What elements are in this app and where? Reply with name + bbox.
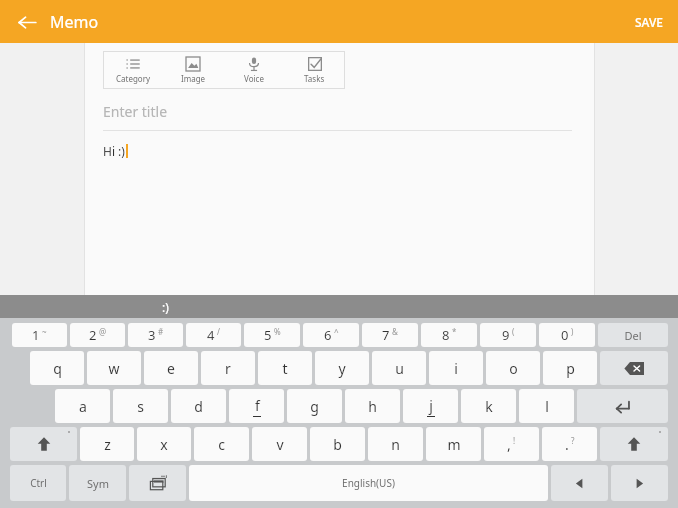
button[interactable]: x <box>137 427 191 461</box>
staticText: , <box>507 435 511 454</box>
staticText: x <box>160 435 168 454</box>
staticText: j <box>429 396 433 415</box>
button[interactable]: v <box>252 427 307 461</box>
button[interactable]: p <box>543 351 597 385</box>
button[interactable]: z <box>80 427 134 461</box>
button[interactable]: Sym <box>69 465 126 501</box>
button[interactable]: Voice <box>223 51 284 89</box>
button[interactable]: t <box>258 351 312 385</box>
button[interactable]: Ctrl <box>10 465 66 501</box>
button[interactable]: Move right <box>611 465 668 501</box>
staticText: y <box>338 359 346 378</box>
staticText: ? <box>571 435 575 446</box>
staticText: Enter title <box>103 102 168 121</box>
button[interactable]: a <box>55 389 110 423</box>
button[interactable]: Tasks <box>284 51 345 89</box>
staticText: r <box>225 359 231 378</box>
staticText: Ctrl <box>30 476 47 490</box>
staticText: SAVE <box>635 14 664 30</box>
button[interactable]: SAVE <box>621 2 678 42</box>
staticText: a <box>79 397 87 416</box>
button[interactable]: h <box>345 389 400 423</box>
button[interactable]: y <box>315 351 369 385</box>
button[interactable]: Shift <box>600 427 668 461</box>
staticText: 2 <box>89 326 97 344</box>
staticText: i <box>454 359 458 378</box>
staticText: o <box>509 359 518 378</box>
staticText: f <box>255 396 260 415</box>
button[interactable]: k <box>461 389 516 423</box>
button[interactable]: , <box>484 427 539 461</box>
staticText: g <box>310 397 319 416</box>
button[interactable]: 3 <box>128 323 183 347</box>
staticText: Sym <box>87 476 109 491</box>
button[interactable]: Move left <box>551 465 608 501</box>
staticText: ~ <box>42 326 47 337</box>
staticText: Voice <box>244 73 264 84</box>
button[interactable]: 5 <box>244 323 300 347</box>
button[interactable]: English(US) <box>189 465 548 501</box>
staticText: * <box>452 326 457 337</box>
button[interactable]: s <box>113 389 168 423</box>
button[interactable]: Switch keyboard <box>129 465 186 501</box>
button[interactable]: Shift <box>10 427 77 461</box>
staticText: 5 <box>264 326 272 344</box>
button[interactable]: 9 <box>480 323 536 347</box>
staticText: Hi :) <box>103 143 125 159</box>
button[interactable]: Del <box>598 323 668 347</box>
staticText: p <box>566 359 575 378</box>
button[interactable]: 0 <box>539 323 595 347</box>
button[interactable]: o <box>486 351 540 385</box>
button[interactable]: 1 <box>12 323 67 347</box>
button[interactable]: :) <box>150 296 181 318</box>
staticText: 9 <box>502 326 510 344</box>
staticText: l <box>545 397 549 416</box>
staticText: m <box>447 435 461 454</box>
button[interactable]: 6 <box>303 323 359 347</box>
staticText: h <box>368 397 377 416</box>
staticText: 4 <box>207 326 215 344</box>
button[interactable]: Image <box>163 51 223 89</box>
button[interactable]: 2 <box>70 323 125 347</box>
staticText: q <box>53 359 62 378</box>
staticText: 3 <box>148 326 156 344</box>
button[interactable]: . <box>542 427 597 461</box>
button[interactable]: Back <box>10 5 44 39</box>
button[interactable]: Enter <box>577 389 668 423</box>
button[interactable]: 4 <box>186 323 241 347</box>
button[interactable]: j <box>403 389 458 423</box>
button[interactable]: e <box>144 351 198 385</box>
staticText: u <box>395 359 404 378</box>
staticText: :) <box>162 299 169 315</box>
button[interactable]: m <box>426 427 481 461</box>
button[interactable]: f <box>229 389 284 423</box>
button[interactable]: Category <box>103 51 163 89</box>
staticText: k <box>485 397 493 416</box>
button[interactable]: n <box>368 427 423 461</box>
button[interactable]: 8 <box>421 323 477 347</box>
staticText: c <box>218 435 225 454</box>
button[interactable]: 7 <box>362 323 418 347</box>
staticText: s <box>137 397 144 416</box>
button[interactable]: b <box>310 427 365 461</box>
button[interactable]: g <box>287 389 342 423</box>
button[interactable]: w <box>87 351 141 385</box>
staticText: . <box>565 435 569 454</box>
button[interactable]: u <box>372 351 426 385</box>
staticText: 0 <box>561 326 569 344</box>
button[interactable]: r <box>201 351 255 385</box>
button[interactable]: Backspace <box>600 351 668 385</box>
button[interactable]: l <box>519 389 574 423</box>
staticText: Tasks <box>304 73 325 84</box>
button[interactable]: q <box>30 351 84 385</box>
staticText: z <box>104 435 111 454</box>
button[interactable]: c <box>194 427 249 461</box>
staticText: n <box>391 435 400 454</box>
staticText: % <box>274 326 281 337</box>
button[interactable]: d <box>171 389 226 423</box>
staticText: ( <box>512 326 515 337</box>
staticText: 1 <box>32 326 40 344</box>
button[interactable]: i <box>429 351 483 385</box>
staticText: ) <box>571 326 574 337</box>
staticText: English(US) <box>342 476 395 490</box>
